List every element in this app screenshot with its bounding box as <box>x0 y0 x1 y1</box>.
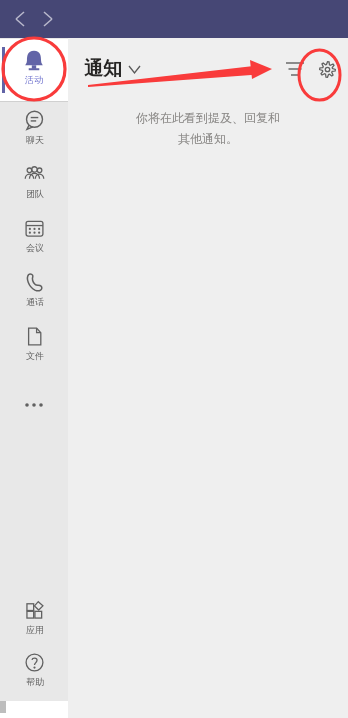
staticText: 活动 <box>25 74 43 85</box>
button[interactable]: 通话 <box>0 272 68 320</box>
staticText: 应用 <box>26 624 44 635</box>
button[interactable]: Settings <box>314 56 340 82</box>
button[interactable]: 文件 <box>0 326 68 374</box>
button[interactable]: 应用 <box>0 600 68 648</box>
staticText: 帮助 <box>26 676 44 687</box>
button[interactable]: More <box>20 394 48 416</box>
staticText: 文件 <box>26 350 44 361</box>
button[interactable]: Forward <box>34 5 62 33</box>
staticText: 会议 <box>26 242 44 253</box>
button[interactable]: 聊天 <box>0 110 68 158</box>
button[interactable]: Back <box>6 5 34 33</box>
staticText: 你将在此看到提及、回复和 其他通知。 <box>136 110 280 147</box>
staticText: 通知 <box>84 57 122 81</box>
button[interactable]: 会议 <box>0 218 68 266</box>
button[interactable]: 团队 <box>0 164 68 212</box>
staticText: 通话 <box>26 296 44 307</box>
button[interactable]: 帮助 <box>0 652 68 700</box>
button[interactable]: Filter <box>282 56 308 82</box>
staticText: 聊天 <box>26 134 44 145</box>
button[interactable]: 通知 <box>84 57 140 81</box>
staticText: 团队 <box>26 188 44 199</box>
button[interactable]: 活动 <box>0 39 68 101</box>
